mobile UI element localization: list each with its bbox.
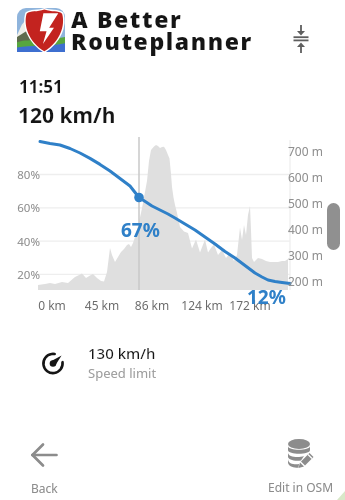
staticText: 700 m — [288, 143, 323, 159]
button[interactable]: Back — [18, 443, 70, 496]
button[interactable] — [288, 20, 314, 58]
staticText: A Better — [71, 3, 183, 34]
staticText: 600 m — [288, 169, 323, 185]
staticText: Routeplanner — [71, 25, 253, 56]
staticText: 45 km — [72, 297, 132, 313]
staticText: 67% — [121, 217, 160, 243]
staticText: 80% — [12, 167, 40, 183]
staticText: 124 km — [172, 297, 232, 313]
staticText: Back — [31, 480, 58, 496]
staticText: 40% — [12, 234, 40, 250]
staticText: 60% — [12, 200, 40, 216]
button[interactable]: 130 km/h — [38, 343, 218, 382]
staticText: 400 m — [288, 221, 323, 237]
staticText: 200 m — [288, 273, 323, 289]
staticText: 300 m — [288, 247, 323, 263]
staticText: 0 km — [22, 297, 82, 313]
staticText: 172 km — [220, 297, 280, 313]
staticText: 500 m — [288, 195, 323, 211]
staticText: 86 km — [122, 297, 182, 313]
staticText: 130 km/h — [88, 343, 156, 363]
staticText: Edit in OSM — [268, 479, 334, 495]
staticText: 20% — [12, 267, 40, 283]
button[interactable]: Edit in OSM — [263, 438, 339, 495]
staticText: 11:51 — [19, 75, 63, 98]
staticText: 12% — [247, 284, 286, 310]
staticText: 120 km/h — [18, 101, 116, 130]
staticText: Speed limit — [88, 364, 157, 382]
